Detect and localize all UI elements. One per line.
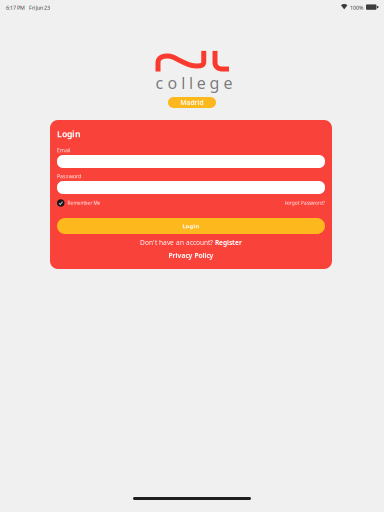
staticText: Madrid [180,98,203,107]
staticText: Remember Me [67,200,100,206]
staticText: Don't have an account? [140,238,215,247]
staticText: college [156,72,232,94]
staticText: 100% [350,4,363,11]
button[interactable]: Login [57,218,325,234]
button[interactable]: Forgot Password? [279,198,325,207]
staticText: Login [57,128,81,140]
staticText: Privacy Policy [168,251,213,260]
button[interactable]: Privacy Policy [50,251,332,260]
staticText: 6:17 PM [6,4,25,11]
staticText: Fri Jun 23 [29,4,50,11]
staticText: Email [57,146,70,154]
button[interactable]: Remember Me [57,198,100,207]
staticText: Login [182,222,199,230]
staticText: Register [215,238,242,247]
staticText: Forgot Password? [285,200,325,206]
button[interactable]: Madrid [168,97,216,108]
button[interactable]: Register [215,238,242,247]
staticText: Password [57,172,81,180]
